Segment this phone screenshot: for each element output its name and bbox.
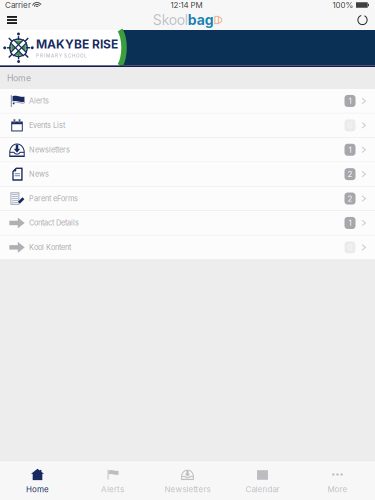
staticText: Events List: [29, 121, 65, 130]
staticText: 12:14 PM: [170, 0, 202, 10]
button[interactable]: More: [300, 460, 375, 500]
staticText: More: [327, 484, 347, 494]
staticText: 2: [347, 194, 352, 203]
button[interactable]: Menu: [0, 10, 25, 30]
staticText: Calendar: [245, 484, 279, 494]
staticText: Home: [7, 73, 31, 83]
staticText: Alerts: [29, 96, 49, 105]
staticText: 100%: [332, 0, 353, 10]
staticText: bag: [188, 11, 214, 28]
button[interactable]: Events List: [0, 113, 375, 138]
staticText: 0: [347, 120, 352, 130]
button[interactable]: Parent eForms: [0, 187, 375, 211]
staticText: 1: [348, 96, 351, 106]
staticText: P R I M A R Y S C H O O L: [36, 53, 87, 58]
button[interactable]: Contact Details: [0, 211, 375, 235]
staticText: Skool: [153, 11, 188, 28]
staticText: News: [29, 170, 49, 179]
staticText: 1: [348, 145, 351, 155]
button[interactable]: Refresh: [349, 10, 375, 30]
staticText: MAKYBE RISE: [36, 37, 118, 51]
button[interactable]: Home: [0, 460, 75, 500]
staticText: Contact Details: [29, 218, 79, 227]
staticText: Carrier: [5, 0, 31, 10]
button[interactable]: News: [0, 162, 375, 187]
staticText: Home: [26, 484, 49, 494]
staticText: Parent eForms: [29, 194, 78, 203]
staticText: 2: [347, 169, 352, 179]
staticText: Kool Kontent: [29, 243, 71, 252]
staticText: Newsletters: [164, 484, 210, 494]
button[interactable]: Newsletters: [0, 138, 375, 162]
button[interactable]: Calendar: [225, 460, 300, 500]
button[interactable]: Alerts: [0, 89, 375, 113]
button[interactable]: Newsletters: [150, 460, 225, 500]
button[interactable]: Kool Kontent: [0, 235, 375, 260]
staticText: 0: [347, 242, 352, 252]
staticText: 1: [348, 218, 351, 228]
staticText: Newsletters: [29, 145, 70, 154]
button[interactable]: Alerts: [75, 460, 150, 500]
staticText: Alerts: [101, 484, 124, 494]
